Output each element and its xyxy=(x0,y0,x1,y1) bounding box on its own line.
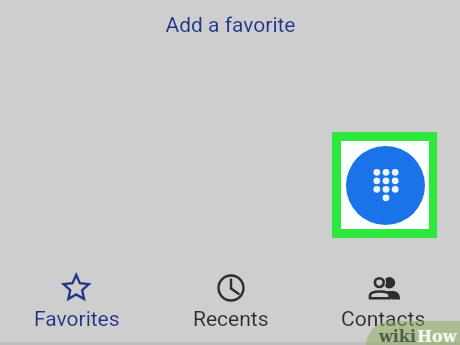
staticText: Add a favorite xyxy=(165,13,296,38)
staticText: wiki xyxy=(379,327,417,345)
button[interactable]: Open dial pad xyxy=(346,146,425,225)
button[interactable]: Add a favorite xyxy=(0,0,460,48)
button[interactable]: Recents xyxy=(154,265,307,345)
button[interactable]: Contacts xyxy=(307,265,460,345)
button[interactable]: Favorites xyxy=(0,265,154,345)
staticText: How xyxy=(417,327,457,345)
staticText: Recents xyxy=(193,307,269,332)
staticText: Contacts xyxy=(341,307,426,332)
staticText: Favorites xyxy=(34,307,120,332)
